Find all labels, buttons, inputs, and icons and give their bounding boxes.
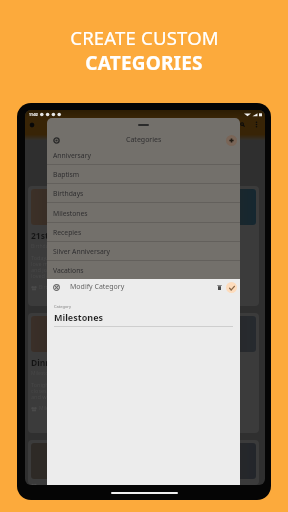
staticText: CREATE CUSTOM (70, 25, 219, 50)
staticText: Jonathan's Trip (31, 484, 95, 485)
staticText: Categories (126, 135, 162, 145)
staticText: Silver Anniversary (53, 247, 111, 256)
button[interactable]: Birthdays (47, 184, 240, 203)
staticText: Birthdays (53, 189, 84, 198)
button[interactable]: Add category (226, 135, 237, 146)
button[interactable]: Delete (214, 282, 224, 292)
button[interactable]: 21st Birthday (28, 186, 259, 306)
button[interactable]: Anniversary (47, 146, 240, 165)
button[interactable]: Baptism (47, 165, 240, 184)
staticText: Recepies (53, 228, 82, 237)
button[interactable]: Dinner with Friends (28, 313, 259, 433)
button[interactable]: Recepies (47, 223, 240, 242)
staticText: Birthdays • June 22, 2024 (31, 243, 92, 250)
staticText: 11:02 (29, 112, 38, 117)
staticText: Modify Category (70, 282, 125, 292)
staticText: Today, I celebrated my 21st birthday wit… (31, 254, 170, 280)
staticText: Tonight, I had the most wonderful evenin… (31, 381, 165, 401)
staticText: 21st Birthday (31, 230, 88, 242)
button[interactable]: Jonathan's Trip (28, 440, 259, 485)
staticText: Anniversary (53, 151, 91, 160)
staticText: Baptism (53, 170, 80, 179)
staticText: CATEGORIES (85, 50, 203, 76)
staticText: Category (54, 304, 72, 309)
button[interactable]: Vacations (47, 261, 240, 280)
button[interactable]: More options (252, 120, 261, 129)
button[interactable]: Milestones (47, 204, 240, 223)
staticText: Vacations (53, 266, 84, 275)
button[interactable]: Confirm (226, 282, 237, 293)
button[interactable]: Search (238, 120, 247, 129)
staticText: Dinner with Friends (31, 357, 115, 369)
staticText: Milestones (54, 311, 104, 323)
button[interactable]: Settings (27, 120, 36, 129)
button[interactable]: Silver Anniversary (47, 242, 240, 261)
staticText: Birthdays • June 22, 2024 (39, 284, 100, 291)
staticText: Milestones • May 14, 2024 (39, 405, 103, 412)
staticText: Milestones (53, 209, 88, 218)
button[interactable]: Modify Category (51, 279, 127, 295)
button[interactable]: Close (51, 135, 62, 146)
staticText: Milestones • May 14, 2024 (31, 370, 95, 377)
